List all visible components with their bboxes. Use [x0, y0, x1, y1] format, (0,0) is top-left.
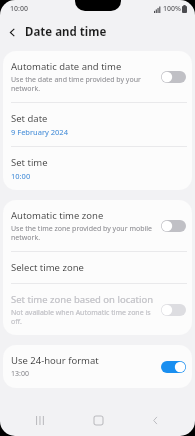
staticText: Not available when Automatic time zone i…: [11, 308, 155, 326]
staticText: 10:00: [10, 4, 28, 14]
staticText: Use 24-hour format: [11, 354, 99, 367]
staticText: 10:00: [11, 171, 31, 181]
button[interactable]: Navigate up: [0, 20, 25, 45]
staticText: Automatic time zone: [11, 209, 104, 222]
button[interactable]: Set date: [3, 103, 192, 146]
staticText: 100%: [163, 4, 181, 14]
button[interactable]: Use 24-hour format: [3, 345, 192, 388]
staticText: Select time zone: [11, 261, 84, 274]
button[interactable]: Off: [161, 303, 186, 317]
staticText: Set time zone based on location: [11, 293, 154, 306]
staticText: 9 February 2024: [11, 127, 68, 137]
staticText: Use the time zone provided by your mobil…: [11, 224, 155, 242]
button[interactable]: Automatic date and time: [3, 51, 192, 102]
button[interactable]: Off: [161, 219, 186, 233]
button[interactable]: Off: [161, 70, 186, 84]
staticText: Date and time: [25, 24, 107, 40]
button[interactable]: On: [161, 360, 186, 374]
staticText: Set time: [11, 156, 48, 169]
staticText: Set date: [11, 112, 48, 125]
staticText: 13:00: [11, 369, 29, 379]
button[interactable]: Back: [138, 405, 172, 436]
button[interactable]: Automatic time zone: [3, 200, 192, 251]
staticText: Use the date and time provided by your n…: [11, 75, 155, 93]
button[interactable]: Home: [81, 405, 115, 436]
staticText: Automatic date and time: [11, 60, 122, 73]
button[interactable]: Set time zone based on location: [3, 284, 192, 335]
button[interactable]: Select time zone: [3, 252, 192, 283]
button[interactable]: Set time: [3, 147, 192, 190]
button[interactable]: Recent apps: [23, 405, 57, 436]
